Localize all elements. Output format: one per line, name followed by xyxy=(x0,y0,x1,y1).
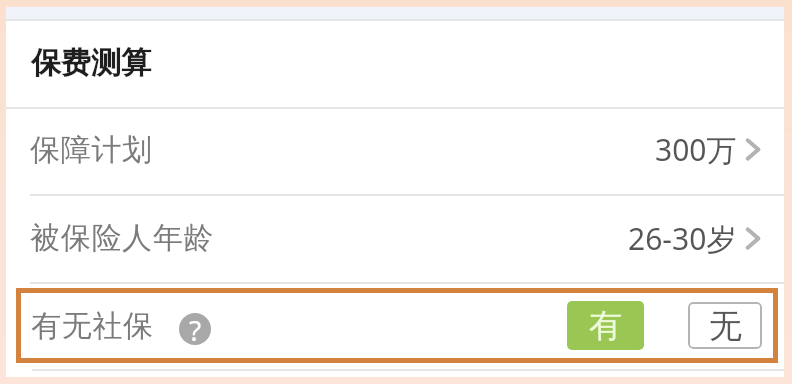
staticText: 有无社保 xyxy=(31,307,154,345)
staticText: 26-30岁 xyxy=(628,218,737,259)
staticText: 无 xyxy=(709,305,742,347)
staticText: ? xyxy=(189,313,202,343)
button[interactable]: 有无社保 xyxy=(16,288,778,363)
staticText: 保障计划 xyxy=(30,131,153,169)
staticText: 有 xyxy=(589,305,622,347)
staticText: 300万 xyxy=(655,129,737,170)
button[interactable]: 保障计划 xyxy=(6,107,784,192)
button[interactable]: 有 xyxy=(567,301,644,350)
button[interactable]: 无 xyxy=(688,302,762,349)
button[interactable]: Help xyxy=(179,313,211,345)
staticText: 被保险人年龄 xyxy=(30,219,215,257)
button[interactable]: 被保险人年龄 xyxy=(6,195,784,281)
staticText: 保费测算 xyxy=(31,44,151,82)
